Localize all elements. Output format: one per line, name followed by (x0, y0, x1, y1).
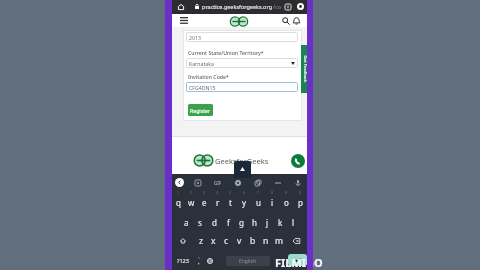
staticText: s (198, 217, 202, 228)
staticText: 6 (243, 190, 246, 195)
button[interactable]: CFG4DN15 (186, 82, 298, 92)
button[interactable]: 7 (251, 191, 265, 211)
staticText: ?123 (177, 257, 189, 264)
staticText: /co (273, 3, 282, 10)
staticText: j (266, 217, 269, 228)
button[interactable]: Register (188, 104, 213, 116)
staticText: English (239, 258, 257, 265)
staticText: o (284, 197, 289, 208)
button[interactable]: Downloads (282, 1, 293, 12)
button[interactable]: Theme (253, 178, 263, 188)
button[interactable]: c (220, 231, 233, 251)
button[interactable]: Menu (178, 15, 189, 26)
staticText: l (292, 217, 295, 228)
staticText: p (298, 197, 303, 208)
button[interactable]: Karnataka (186, 58, 298, 68)
staticText: GIF (214, 180, 222, 186)
button[interactable]: 5 (224, 191, 237, 211)
staticText: b (250, 235, 256, 247)
button[interactable]: Notifications (291, 15, 302, 26)
button[interactable]: ?123 (172, 251, 194, 270)
staticText: 7 (257, 190, 260, 195)
button[interactable]: j (261, 211, 274, 231)
staticText: m (275, 235, 283, 247)
staticText: z (199, 235, 203, 247)
button[interactable]: Hide keyboard (234, 161, 251, 178)
button[interactable]: 4 (211, 191, 224, 211)
button[interactable]: g (235, 211, 248, 231)
button[interactable]: 9 (279, 191, 293, 211)
button[interactable]: Backspace (285, 231, 307, 251)
staticText: GeeksforGeeks (215, 156, 269, 166)
staticText: 2013 (189, 34, 201, 41)
button[interactable]: k (274, 211, 287, 231)
staticText: v (237, 235, 242, 247)
button[interactable]: 3 (198, 191, 211, 211)
button[interactable]: 6 (237, 191, 251, 211)
button[interactable]: Got feedback (301, 45, 307, 93)
button[interactable]: 2 (185, 191, 198, 211)
button[interactable]: v (233, 231, 246, 251)
staticText: g (239, 217, 244, 228)
staticText: y (242, 197, 247, 208)
button[interactable]: Stickers (193, 178, 203, 188)
staticText: u (256, 197, 261, 208)
button[interactable]: b (246, 231, 259, 251)
button[interactable]: Enter (288, 254, 307, 266)
button[interactable]: x (207, 231, 220, 251)
staticText: w (188, 197, 195, 208)
button[interactable]: Search (280, 15, 291, 26)
button[interactable]: WhatsApp (291, 154, 305, 168)
button[interactable]: Change language (204, 251, 216, 270)
button[interactable]: 1 (172, 191, 185, 211)
staticText: , (198, 258, 200, 266)
staticText: t (229, 197, 232, 208)
staticText: n (263, 235, 269, 247)
staticText: 3 (203, 190, 206, 195)
staticText: i (271, 197, 274, 208)
staticText: Karnataka (189, 60, 214, 67)
staticText: 4 (216, 190, 219, 195)
staticText: 8 (271, 190, 274, 195)
staticText: e (202, 197, 207, 208)
staticText: r (216, 197, 220, 208)
button[interactable]: Account (295, 1, 306, 12)
staticText: Register (190, 107, 211, 114)
button[interactable]: GIF (213, 178, 223, 188)
staticText: f (227, 217, 230, 228)
staticText: 1 (177, 190, 180, 195)
staticText: x (211, 235, 216, 247)
button[interactable]: Voice input (293, 178, 303, 188)
staticText: 2 (190, 190, 193, 195)
button[interactable]: English (226, 256, 270, 266)
button[interactable]: a (179, 211, 193, 231)
button[interactable]: 8 (265, 191, 279, 211)
staticText: 0 (299, 190, 302, 195)
staticText: k (278, 217, 283, 228)
staticText: practice.geeksforgeeks.org (202, 3, 273, 10)
button[interactable]: Expand toolbar (175, 178, 184, 187)
staticText: 9 (285, 190, 288, 195)
button[interactable]: d (207, 211, 221, 231)
button[interactable]: Shift (172, 231, 194, 251)
button[interactable]: More (273, 178, 283, 188)
staticText: Invitation Code* (188, 73, 229, 80)
button[interactable]: 0 (293, 191, 307, 211)
staticText: FILMIGO (275, 255, 323, 270)
staticText: 5 (229, 190, 232, 195)
staticText: Got Feedback (301, 55, 307, 82)
staticText: q (176, 197, 181, 208)
button[interactable]: Home (175, 1, 186, 12)
button[interactable]: f (221, 211, 235, 231)
button[interactable]: n (259, 231, 272, 251)
button[interactable]: Settings (233, 178, 243, 188)
button[interactable]: s (193, 211, 207, 231)
button[interactable]: l (287, 211, 300, 231)
staticText: c (224, 235, 229, 247)
button[interactable]: 2013 (186, 32, 298, 42)
button[interactable]: z (194, 231, 207, 251)
button[interactable]: m (272, 231, 285, 251)
button[interactable]: h (248, 211, 261, 231)
button[interactable]: ° (194, 251, 204, 270)
staticText: d (212, 217, 217, 228)
